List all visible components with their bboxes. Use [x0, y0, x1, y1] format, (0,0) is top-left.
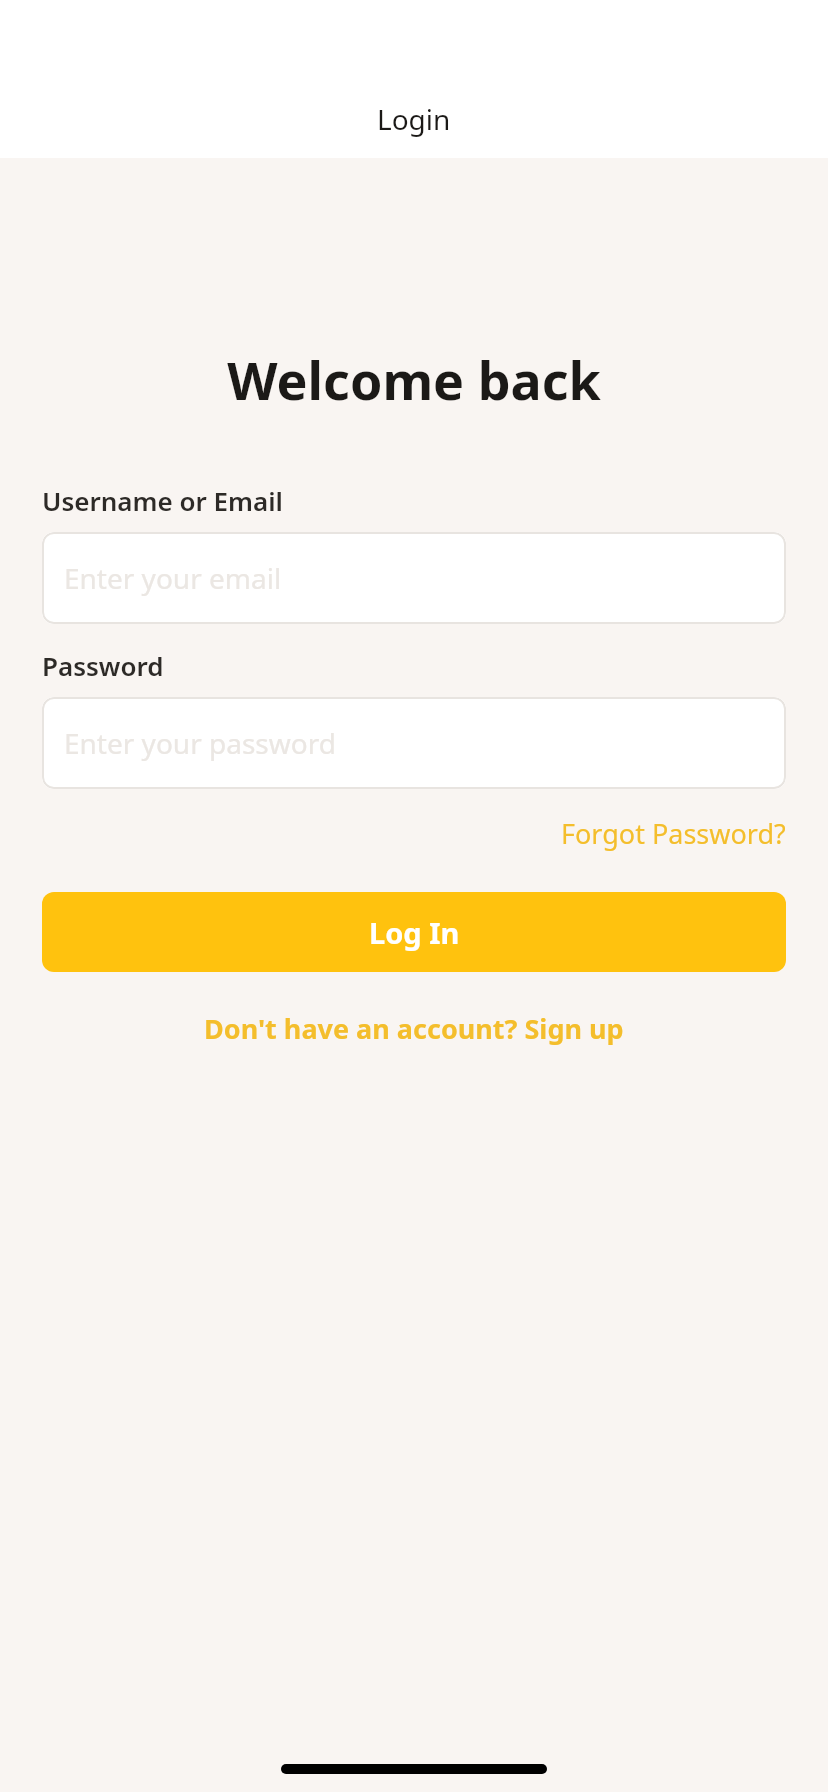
- staticText: Welcome back: [0, 344, 828, 415]
- button[interactable]: Log In: [42, 892, 786, 972]
- staticText: Don't have an account? Sign up: [204, 1010, 624, 1047]
- staticText: Log In: [369, 913, 460, 952]
- staticText: Login: [377, 100, 451, 138]
- button[interactable]: Enter your email: [42, 532, 786, 624]
- staticText: Forgot Password?: [561, 815, 786, 852]
- staticText: Enter your email: [64, 559, 282, 597]
- button[interactable]: Forgot Password?: [561, 811, 828, 856]
- button[interactable]: Enter your password: [42, 697, 786, 789]
- staticText: Password: [42, 648, 164, 683]
- staticText: Username or Email: [42, 483, 283, 518]
- button[interactable]: Don't have an account? Sign up: [196, 1002, 632, 1055]
- staticText: Enter your password: [64, 724, 336, 762]
